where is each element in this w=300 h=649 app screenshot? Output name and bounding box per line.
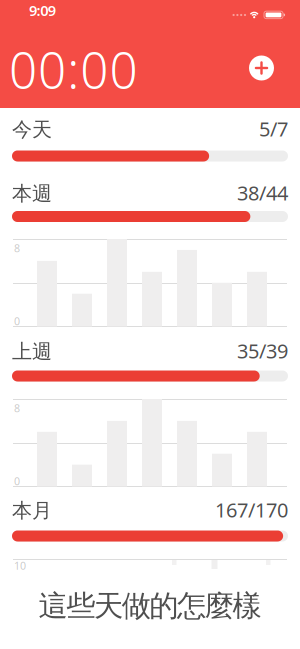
staticText: 00:00 — [9, 37, 137, 102]
button[interactable] — [249, 55, 274, 80]
staticText: 167/170 — [215, 496, 288, 523]
staticText: 上週 — [12, 339, 52, 364]
staticText: 35/39 — [237, 337, 288, 364]
staticText: 10 — [14, 558, 26, 573]
staticText: 8 — [14, 401, 20, 415]
staticText: 這些天做的怎麼樣 — [38, 588, 261, 624]
staticText: 本週 — [12, 181, 52, 206]
staticText: 38/44 — [237, 179, 288, 206]
staticText: 9:09 — [29, 0, 56, 20]
staticText: 今天 — [12, 117, 52, 142]
staticText: 0 — [14, 314, 20, 328]
staticText: 本月 — [12, 498, 52, 523]
staticText: 0 — [14, 474, 20, 488]
staticText: 5/7 — [259, 115, 288, 142]
staticText: 8 — [14, 241, 20, 255]
